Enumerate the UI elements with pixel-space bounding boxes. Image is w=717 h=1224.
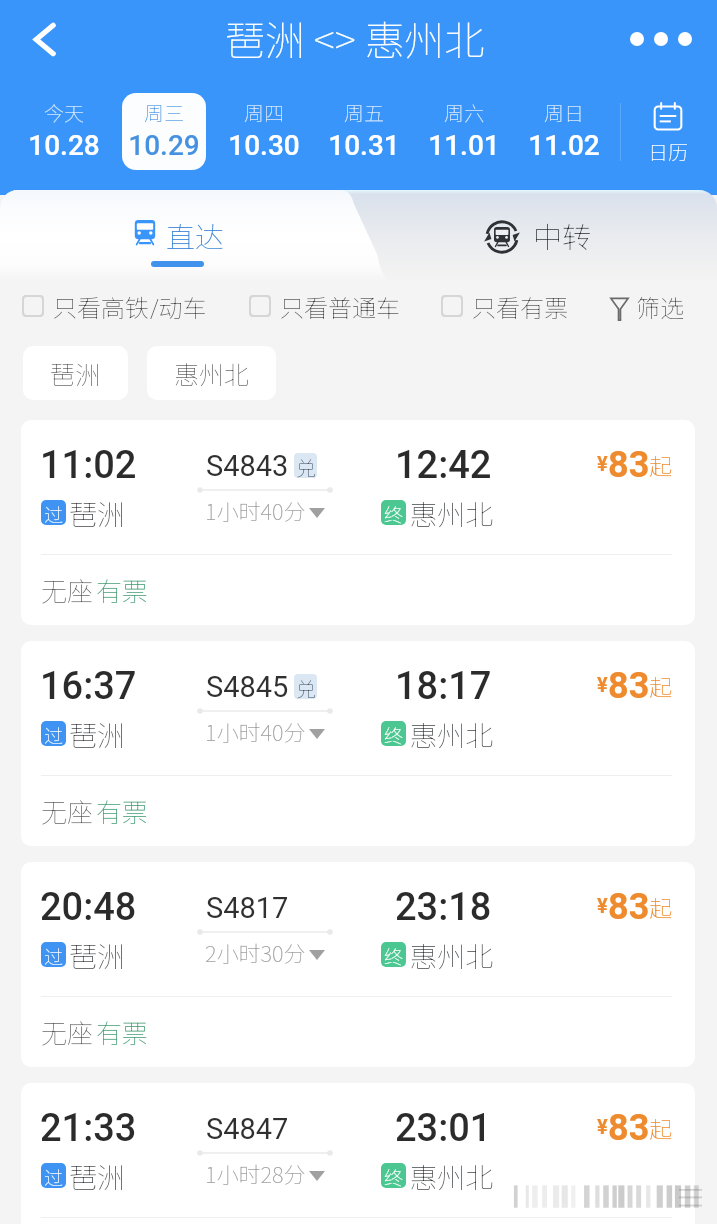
- staticText: S4843: [206, 449, 289, 483]
- staticText: 无座: [41, 792, 94, 830]
- staticText: 23:01: [395, 1106, 492, 1151]
- staticText: 筛选: [636, 289, 684, 319]
- staticText: 1小时28分: [205, 1157, 306, 1189]
- staticText: 周日: [522, 98, 606, 127]
- button[interactable]: 只看普通车: [249, 292, 369, 322]
- button[interactable]: 筛选: [608, 292, 700, 322]
- staticText: ¥: [597, 673, 608, 696]
- staticText: 21:33: [40, 1106, 137, 1151]
- staticText: 兑: [296, 453, 316, 478]
- staticText: 10.29: [122, 129, 206, 162]
- button[interactable]: 21:33: [21, 1083, 695, 1224]
- button[interactable]: 周五: [322, 93, 406, 170]
- staticText: 10.28: [22, 129, 106, 162]
- staticText: 过: [44, 721, 64, 746]
- staticText: 20:48: [40, 885, 137, 930]
- staticText: 83: [608, 665, 650, 707]
- staticText: S4845: [206, 670, 289, 704]
- staticText: 过: [44, 500, 64, 525]
- button[interactable]: 日历: [634, 93, 702, 170]
- staticText: 周三: [122, 98, 206, 127]
- staticText: 11.01: [422, 129, 506, 162]
- staticText: 16:37: [40, 664, 137, 709]
- staticText: 83: [608, 1107, 650, 1149]
- staticText: 过: [44, 1163, 64, 1188]
- staticText: 1小时40分: [205, 494, 306, 526]
- staticText: 终: [384, 942, 404, 967]
- staticText: 今天: [22, 98, 106, 127]
- staticText: 23:18: [395, 885, 492, 930]
- staticText: 直达: [166, 214, 225, 256]
- staticText: 只看高铁/动车: [53, 289, 207, 319]
- staticText: 琶洲: [69, 935, 126, 976]
- staticText: 终: [384, 1163, 404, 1188]
- staticText: ¥: [597, 452, 608, 475]
- button[interactable]: More options: [618, 10, 706, 68]
- staticText: 12:42: [395, 443, 492, 488]
- staticText: 终: [384, 500, 404, 525]
- staticText: 起: [649, 890, 672, 923]
- staticText: 无座: [41, 1013, 94, 1051]
- staticText: 惠州北: [409, 714, 494, 755]
- staticText: 只看普通车: [280, 289, 400, 319]
- staticText: 起: [649, 1111, 672, 1144]
- button[interactable]: Back: [16, 11, 72, 67]
- button[interactable]: 中转: [478, 210, 598, 258]
- staticText: 10.31: [322, 129, 406, 162]
- staticText: 1小时40分: [205, 715, 306, 747]
- staticText: 日历: [634, 137, 702, 166]
- staticText: 起: [649, 669, 672, 702]
- staticText: 中转: [533, 214, 592, 256]
- button[interactable]: 周日: [522, 93, 606, 170]
- staticText: 琶洲: [69, 1156, 126, 1197]
- staticText: 周四: [222, 98, 306, 127]
- staticText: S4817: [206, 891, 289, 925]
- staticText: 终: [384, 721, 404, 746]
- button[interactable]: 周三: [122, 93, 206, 170]
- staticText: 兑: [296, 674, 316, 699]
- staticText: 琶洲: [69, 493, 126, 534]
- staticText: 有票: [96, 1013, 149, 1051]
- staticText: 83: [608, 886, 650, 928]
- staticText: 18:17: [395, 664, 492, 709]
- staticText: 起: [649, 448, 672, 481]
- staticText: 11:02: [40, 443, 137, 488]
- staticText: 琶洲 <> 惠州北: [225, 9, 485, 67]
- button[interactable]: 11:02: [21, 420, 695, 625]
- staticText: 周五: [322, 98, 406, 127]
- staticText: 83: [608, 444, 650, 486]
- staticText: 10.30: [222, 129, 306, 162]
- staticText: 惠州北: [409, 493, 494, 534]
- button[interactable]: 只看有票: [441, 292, 537, 322]
- button[interactable]: 只看高铁/动车: [22, 292, 176, 322]
- button[interactable]: 周六: [422, 93, 506, 170]
- button[interactable]: 直达: [120, 210, 232, 258]
- staticText: 惠州北: [174, 355, 250, 391]
- button[interactable]: 惠州北: [147, 346, 276, 400]
- staticText: 有票: [96, 571, 149, 609]
- button[interactable]: 琶洲: [23, 346, 128, 400]
- staticText: S4847: [206, 1112, 289, 1146]
- staticText: 有票: [96, 792, 149, 830]
- staticText: 惠州北: [409, 1156, 494, 1197]
- staticText: 2小时30分: [205, 936, 306, 968]
- staticText: 无座: [41, 571, 94, 609]
- staticText: ¥: [597, 894, 608, 917]
- staticText: ¥: [597, 1115, 608, 1138]
- button[interactable]: 周四: [222, 93, 306, 170]
- staticText: 过: [44, 942, 64, 967]
- staticText: 琶洲: [50, 355, 101, 391]
- staticText: 只看有票: [472, 289, 568, 319]
- button[interactable]: 今天: [22, 93, 106, 170]
- button[interactable]: 20:48: [21, 862, 695, 1067]
- staticText: 11.02: [522, 129, 606, 162]
- staticText: 琶洲: [69, 714, 126, 755]
- staticText: 惠州北: [409, 935, 494, 976]
- button[interactable]: 16:37: [21, 641, 695, 846]
- staticText: 周六: [422, 98, 506, 127]
